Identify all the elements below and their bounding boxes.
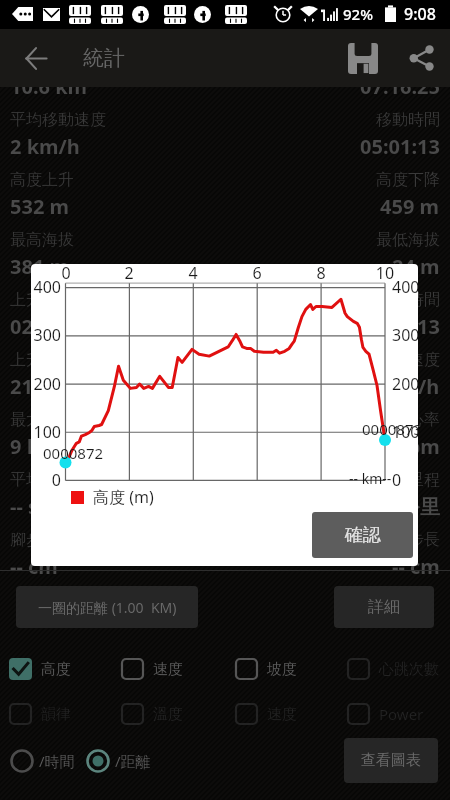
staticText: -- bpm [377, 433, 440, 460]
button[interactable]: Save [334, 29, 392, 87]
staticText: 坡度 [267, 660, 297, 679]
button[interactable]: /時間 [10, 749, 75, 773]
staticText: 上升速度 [10, 350, 74, 370]
staticText: 6 [242, 264, 272, 284]
staticText: 100 [31, 421, 61, 443]
staticText: 高度下降 [376, 170, 440, 190]
staticText: 9 km/h [10, 433, 80, 460]
staticText: 平均心率 [376, 410, 440, 430]
staticText: 平均移動速度 [10, 110, 106, 130]
staticText: 總距離 [10, 50, 58, 70]
staticText: 0 [392, 469, 402, 491]
button[interactable]: 心跳次數 [347, 657, 439, 681]
staticText: 一圈的距離 (1.00 KM) [38, 598, 177, 617]
staticText: 07:16:25 [360, 73, 440, 100]
staticText: 移動時間 [376, 110, 440, 130]
button[interactable]: Power [347, 702, 424, 726]
staticText: 532 m [10, 193, 70, 220]
staticText: -- cm [10, 553, 58, 580]
staticText: 02:46:12 [10, 313, 90, 340]
button[interactable]: 坡度 [235, 657, 297, 681]
staticText: 高度上升 [10, 170, 74, 190]
button[interactable]: Back [7, 29, 65, 87]
staticText: 0 [51, 264, 81, 284]
button[interactable]: 速度 [121, 657, 183, 681]
staticText: 213 m/h [10, 373, 91, 400]
staticText: 92% [343, 4, 373, 24]
staticText: 05:01:13 [360, 133, 440, 160]
staticText: 200 [31, 373, 61, 395]
staticText: 速度 [267, 705, 297, 724]
staticText: /時間 [39, 751, 75, 771]
staticText: 下降速度 [376, 350, 440, 370]
staticText: 溫度 [153, 705, 183, 724]
button[interactable]: 詳細 [334, 586, 434, 628]
staticText: 220 m/h [359, 373, 440, 400]
staticText: 心跳次數 [379, 660, 439, 679]
button[interactable]: 速度 [235, 702, 297, 726]
staticText: 10.6 km [10, 73, 88, 100]
staticText: 下降時間 [376, 290, 440, 310]
staticText: 最高海拔 [10, 230, 74, 250]
staticText: 02:12:13 [360, 313, 440, 340]
staticText: -- km-- [349, 469, 392, 488]
staticText: 速度 [153, 660, 183, 679]
staticText: 9:08 [404, 3, 436, 25]
button[interactable]: 韻律 [9, 702, 71, 726]
staticText: 400 [392, 276, 418, 298]
staticText: 高度 (m) [93, 486, 154, 508]
button[interactable]: 高度 [9, 657, 71, 681]
staticText: 步長 [408, 530, 440, 550]
staticText: 平均步頻 [10, 470, 74, 490]
staticText: 24 m [392, 253, 440, 280]
staticText: 2 km/h [10, 133, 80, 160]
staticText: 2 [114, 264, 144, 284]
staticText: 最大速度 [10, 410, 74, 430]
staticText: 10 [370, 264, 400, 284]
staticText: 詳細 [368, 597, 400, 617]
staticText: 459 m [380, 193, 440, 220]
staticText: 確認 [345, 524, 381, 547]
staticText: 300 [31, 324, 61, 346]
staticText: 100 [392, 421, 418, 443]
staticText: 高度 [41, 660, 71, 679]
staticText: 0000872 [43, 443, 104, 463]
staticText: -- 公里 [382, 493, 440, 520]
staticText: 總里程 [392, 470, 440, 490]
button[interactable]: 查看圖表 [344, 738, 438, 783]
staticText: /距離 [115, 751, 151, 771]
button[interactable]: 溫度 [121, 702, 183, 726]
button[interactable]: 確認 [312, 512, 413, 558]
staticText: 4 [178, 264, 208, 284]
staticText: 上升時間 [10, 290, 74, 310]
staticText: -- cm [392, 553, 440, 580]
button[interactable]: 一圈的距離 (1.00 KM) [16, 586, 198, 628]
button[interactable]: Share [392, 29, 450, 87]
staticText: 總時間 [392, 50, 440, 70]
staticText: 300 [392, 324, 418, 346]
staticText: 200 [392, 373, 418, 395]
staticText: 韻律 [41, 705, 71, 724]
staticText: 最低海拔 [376, 230, 440, 250]
staticText: 統計 [83, 45, 125, 71]
staticText: 381 m [10, 253, 70, 280]
staticText: 0 [31, 469, 61, 491]
staticText: 8 [306, 264, 336, 284]
staticText: 0000873 [362, 419, 418, 439]
staticText: 400 [31, 276, 61, 298]
staticText: 查看圖表 [361, 751, 421, 770]
staticText: -- spm [10, 493, 71, 520]
staticText: Power [379, 704, 424, 724]
button[interactable]: /距離 [86, 749, 151, 773]
staticText: 腳步長 [10, 530, 58, 550]
